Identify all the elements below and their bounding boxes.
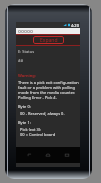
staticText: E: Status xyxy=(18,49,35,54)
staticText: ooooo xyxy=(18,28,34,34)
staticText: Pick (ext 3): 00 = Control board xyxy=(18,127,56,137)
staticText: 4:20 xyxy=(71,23,79,28)
staticText: Expand xyxy=(40,37,58,44)
button[interactable]: Back xyxy=(23,149,35,161)
button[interactable]: Recents xyxy=(61,149,73,161)
button[interactable]: Home xyxy=(42,149,54,161)
button[interactable]: ooooo xyxy=(16,28,80,34)
button[interactable]: Expand xyxy=(33,36,64,44)
staticText: 00 - Reserved, always 0. xyxy=(18,111,65,116)
staticText: Byte 0: xyxy=(18,104,31,109)
staticText: Warning: xyxy=(18,73,37,78)
staticText: ## xyxy=(18,58,24,63)
staticText: Byte 1: xyxy=(18,120,31,125)
staticText: There is a pick exit configuration fault… xyxy=(18,80,80,100)
